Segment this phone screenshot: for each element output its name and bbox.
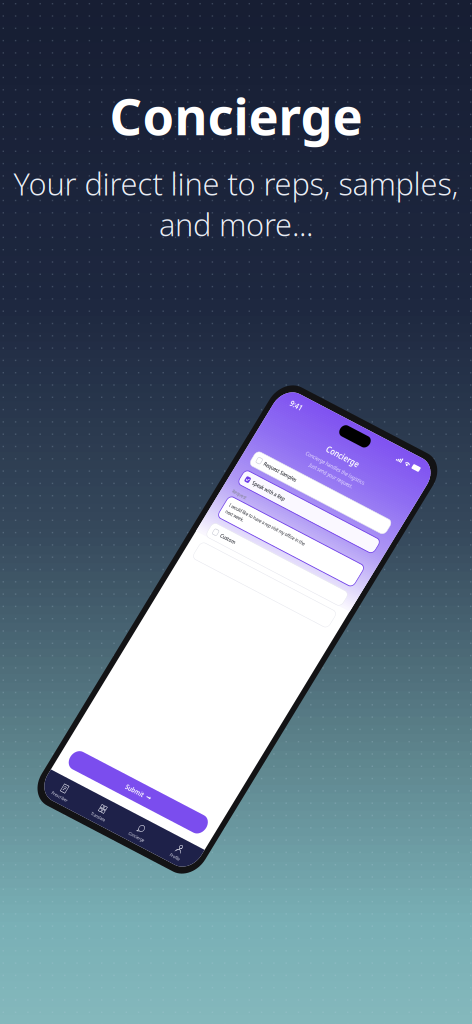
staticText: and more... — [159, 204, 313, 245]
staticText: Request Samples — [93, 216, 211, 235]
staticText: I would like to have a rep visit my offi… — [67, 357, 344, 375]
staticText: 9:41 — [63, 34, 105, 63]
staticText: Concierge — [241, 96, 358, 128]
staticText: Request — [51, 320, 102, 338]
staticText: Your direct line to reps, samples, — [13, 163, 458, 204]
button[interactable]: Request Samples — [51, 204, 472, 247]
staticText: Concierge handles the logistics. — [191, 138, 408, 158]
button[interactable]: Speak with a Rep — [51, 263, 472, 306]
button[interactable]: Custom — [51, 426, 472, 470]
staticText: Concierge — [109, 82, 362, 149]
staticText: Just send your request. — [221, 162, 378, 181]
